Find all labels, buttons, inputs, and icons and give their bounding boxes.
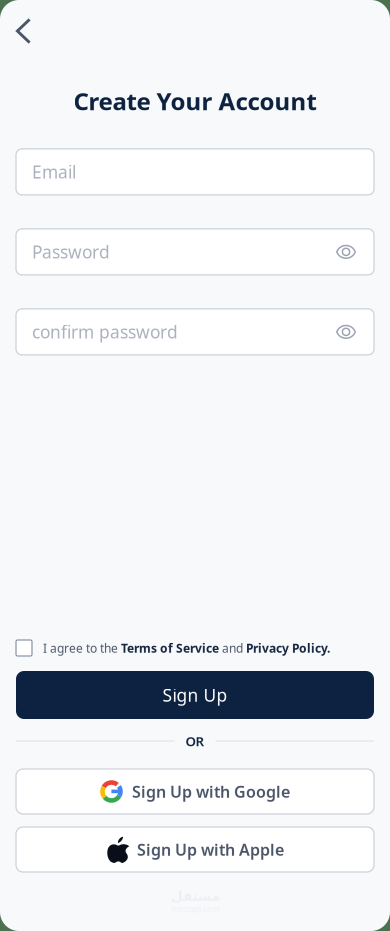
staticText: OR	[185, 732, 204, 750]
staticText: Sign Up with Google	[132, 781, 290, 802]
staticText: Sign Up	[162, 683, 227, 706]
staticText: and	[219, 640, 246, 656]
button[interactable]: Sign Up	[16, 671, 374, 719]
button[interactable]: Privacy Policy.	[246, 640, 330, 656]
button[interactable]: Sign Up with Apple	[16, 827, 374, 872]
button[interactable]: Agree to terms	[16, 640, 32, 656]
staticText: مستقل	[170, 889, 219, 904]
button[interactable]: Terms of Service	[121, 640, 219, 656]
staticText: Terms of Service	[121, 640, 219, 656]
button[interactable]: Back	[0, 10, 43, 52]
staticText: I agree to the	[43, 640, 121, 656]
staticText: Create Your Account	[73, 85, 316, 117]
staticText: Sign Up with Apple	[137, 839, 284, 860]
staticText: Password	[32, 240, 110, 263]
button[interactable]: Sign Up with Google	[16, 769, 374, 814]
staticText: confirm password	[32, 320, 178, 343]
staticText: Email	[32, 160, 76, 183]
staticText: Privacy Policy.	[246, 640, 330, 656]
